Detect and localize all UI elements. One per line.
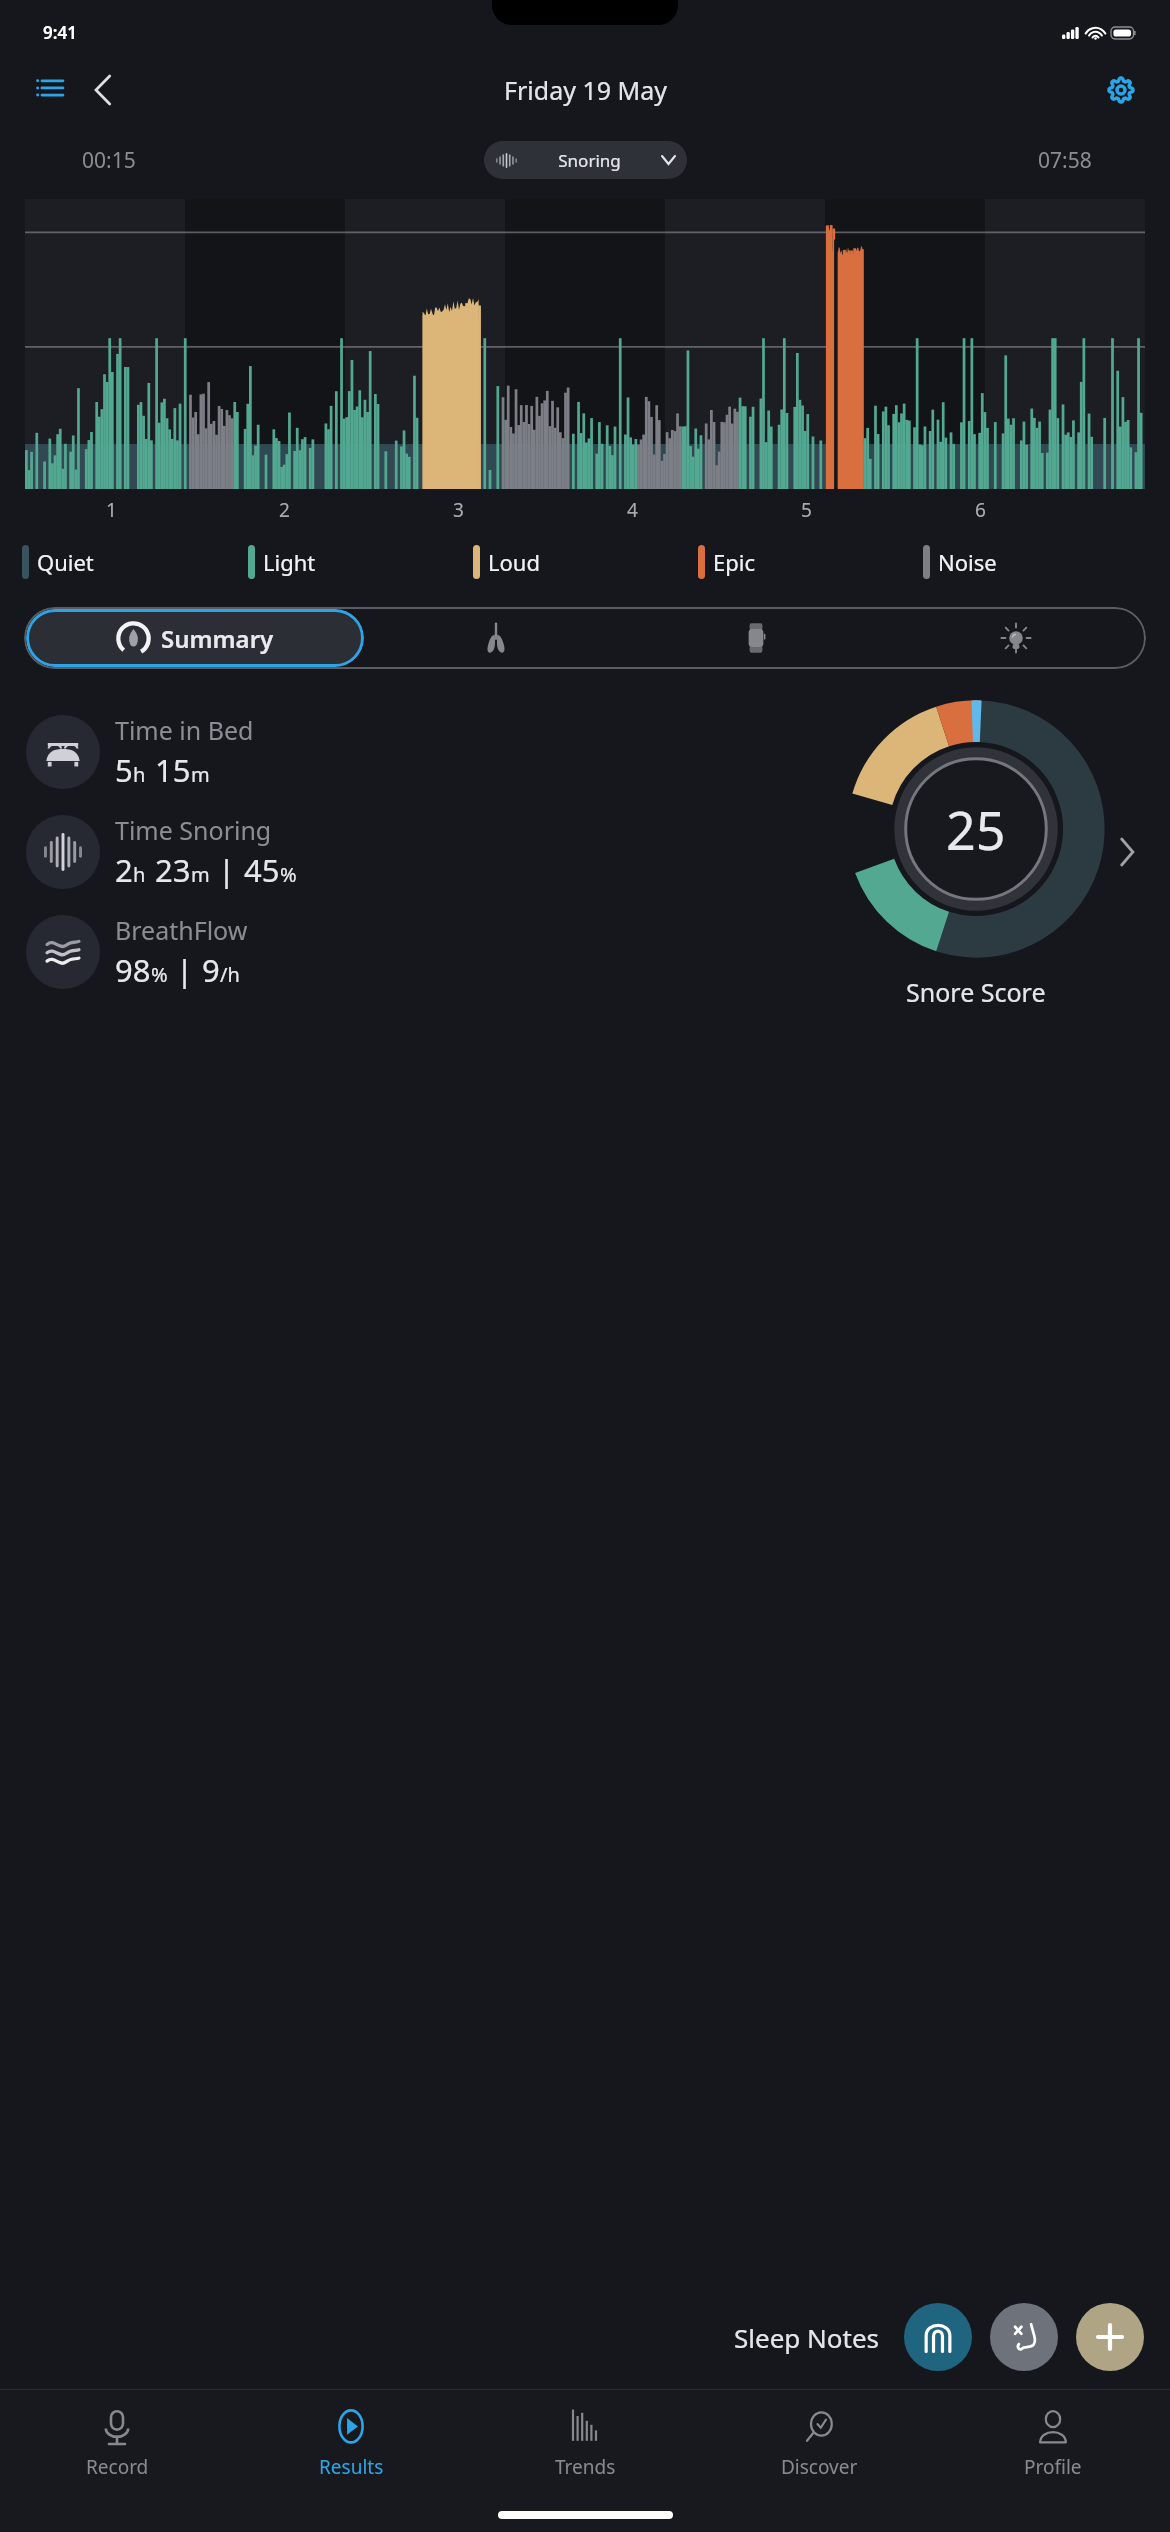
staticText: BreathFlow xyxy=(115,913,248,947)
staticText: 6 xyxy=(975,497,986,523)
button[interactable]: Nasal note xyxy=(990,2303,1058,2371)
staticText: 3 xyxy=(453,497,464,523)
button[interactable]: Settings xyxy=(1096,65,1146,115)
staticText: Noise xyxy=(938,547,997,577)
staticText: h xyxy=(133,861,146,888)
button[interactable]: Watch xyxy=(626,607,886,669)
button[interactable]: Back xyxy=(80,67,126,113)
staticText: Friday 19 May xyxy=(504,73,667,107)
staticText: 23 xyxy=(155,849,191,891)
button[interactable]: Profile xyxy=(936,2390,1170,2498)
staticText: /h xyxy=(220,961,240,988)
button[interactable]: Time in Bed xyxy=(26,713,836,791)
button[interactable]: Trends xyxy=(468,2390,702,2498)
staticText: h xyxy=(133,761,146,788)
staticText: 98 xyxy=(115,949,151,991)
button[interactable]: Mouthpiece note xyxy=(904,2303,972,2371)
staticText: m xyxy=(191,861,210,888)
staticText: Time Snoring xyxy=(115,813,272,847)
staticText: 25 xyxy=(946,794,1006,865)
button[interactable]: Summary xyxy=(26,609,364,667)
staticText: % xyxy=(280,861,297,888)
staticText: 15 xyxy=(155,749,191,791)
staticText: | xyxy=(168,949,202,991)
button[interactable]: Sleep list xyxy=(26,67,72,113)
staticText: Profile xyxy=(1024,2454,1082,2480)
staticText: Epic xyxy=(713,547,755,577)
staticText: Snoring xyxy=(517,149,662,172)
button[interactable]: Noise xyxy=(923,545,1148,579)
staticText: m xyxy=(191,761,210,788)
staticText: 2 xyxy=(279,497,290,523)
staticText: 5 xyxy=(115,749,133,791)
button[interactable]: Time Snoring xyxy=(26,813,836,891)
staticText: 07:58 xyxy=(1038,146,1092,175)
staticText: Discover xyxy=(781,2454,858,2480)
staticText: 45 xyxy=(244,849,280,891)
staticText: Sleep Notes xyxy=(734,2320,880,2355)
button[interactable]: Snore score details xyxy=(1110,812,1144,892)
staticText: Summary xyxy=(161,622,274,655)
staticText: 1 xyxy=(106,497,117,523)
staticText: % xyxy=(151,961,168,988)
staticText: 9 xyxy=(202,949,220,991)
button[interactable]: Add note xyxy=(1076,2303,1144,2371)
staticText: Trends xyxy=(555,2454,616,2480)
staticText: | xyxy=(210,849,244,891)
staticText: Results xyxy=(319,2454,384,2480)
button[interactable]: Record xyxy=(0,2390,234,2498)
staticText: Snore Score xyxy=(906,975,1046,1009)
staticText: Time in Bed xyxy=(115,713,254,747)
button[interactable]: Epic xyxy=(698,545,923,579)
staticText: 9:41 xyxy=(43,21,77,44)
button[interactable]: BreathFlow xyxy=(26,913,836,991)
staticText: 4 xyxy=(627,497,638,523)
staticText: 00:15 xyxy=(82,146,136,175)
button[interactable]: Light xyxy=(248,545,473,579)
button[interactable]: Discover xyxy=(702,2390,936,2498)
staticText: Record xyxy=(86,2454,149,2480)
button[interactable]: Insights xyxy=(886,607,1146,669)
button[interactable]: Quiet xyxy=(22,545,248,579)
staticText: Light xyxy=(263,547,316,577)
button[interactable]: Breathing xyxy=(366,607,626,669)
staticText: 5 xyxy=(801,497,812,523)
staticText: Loud xyxy=(488,547,540,577)
staticText: 2 xyxy=(115,849,133,891)
button[interactable]: Loud xyxy=(473,545,698,579)
button[interactable]: Results xyxy=(234,2390,468,2498)
staticText: Quiet xyxy=(37,547,94,577)
button[interactable]: Snoring xyxy=(484,141,687,179)
